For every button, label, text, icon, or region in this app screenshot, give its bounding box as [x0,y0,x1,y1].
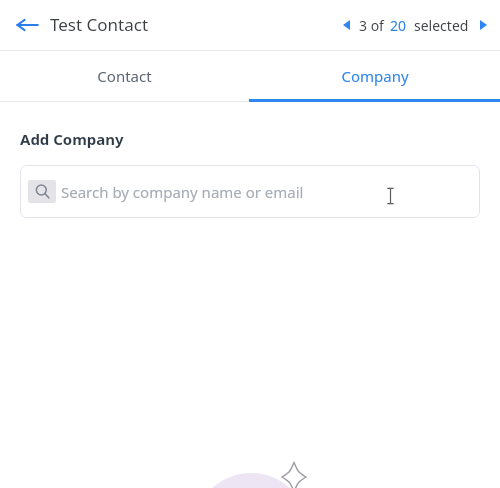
button[interactable]: Next [474,10,492,40]
button[interactable]: 20 [390,16,407,35]
staticText: selected [414,16,469,35]
button[interactable]: Back [8,6,46,44]
button[interactable]: Previous [337,10,355,40]
staticText: 3 of [359,16,384,35]
button[interactable]: Company [249,51,500,101]
staticText: Add Company [20,129,124,149]
staticText: Search by company name or email [61,182,304,202]
button[interactable]: Contact [0,51,249,101]
staticText: Test Contact [50,13,149,36]
staticText: Contact [97,66,152,86]
staticText: 20 [390,16,407,35]
button[interactable]: Search by company name or email [20,165,480,218]
staticText: Company [341,66,409,86]
